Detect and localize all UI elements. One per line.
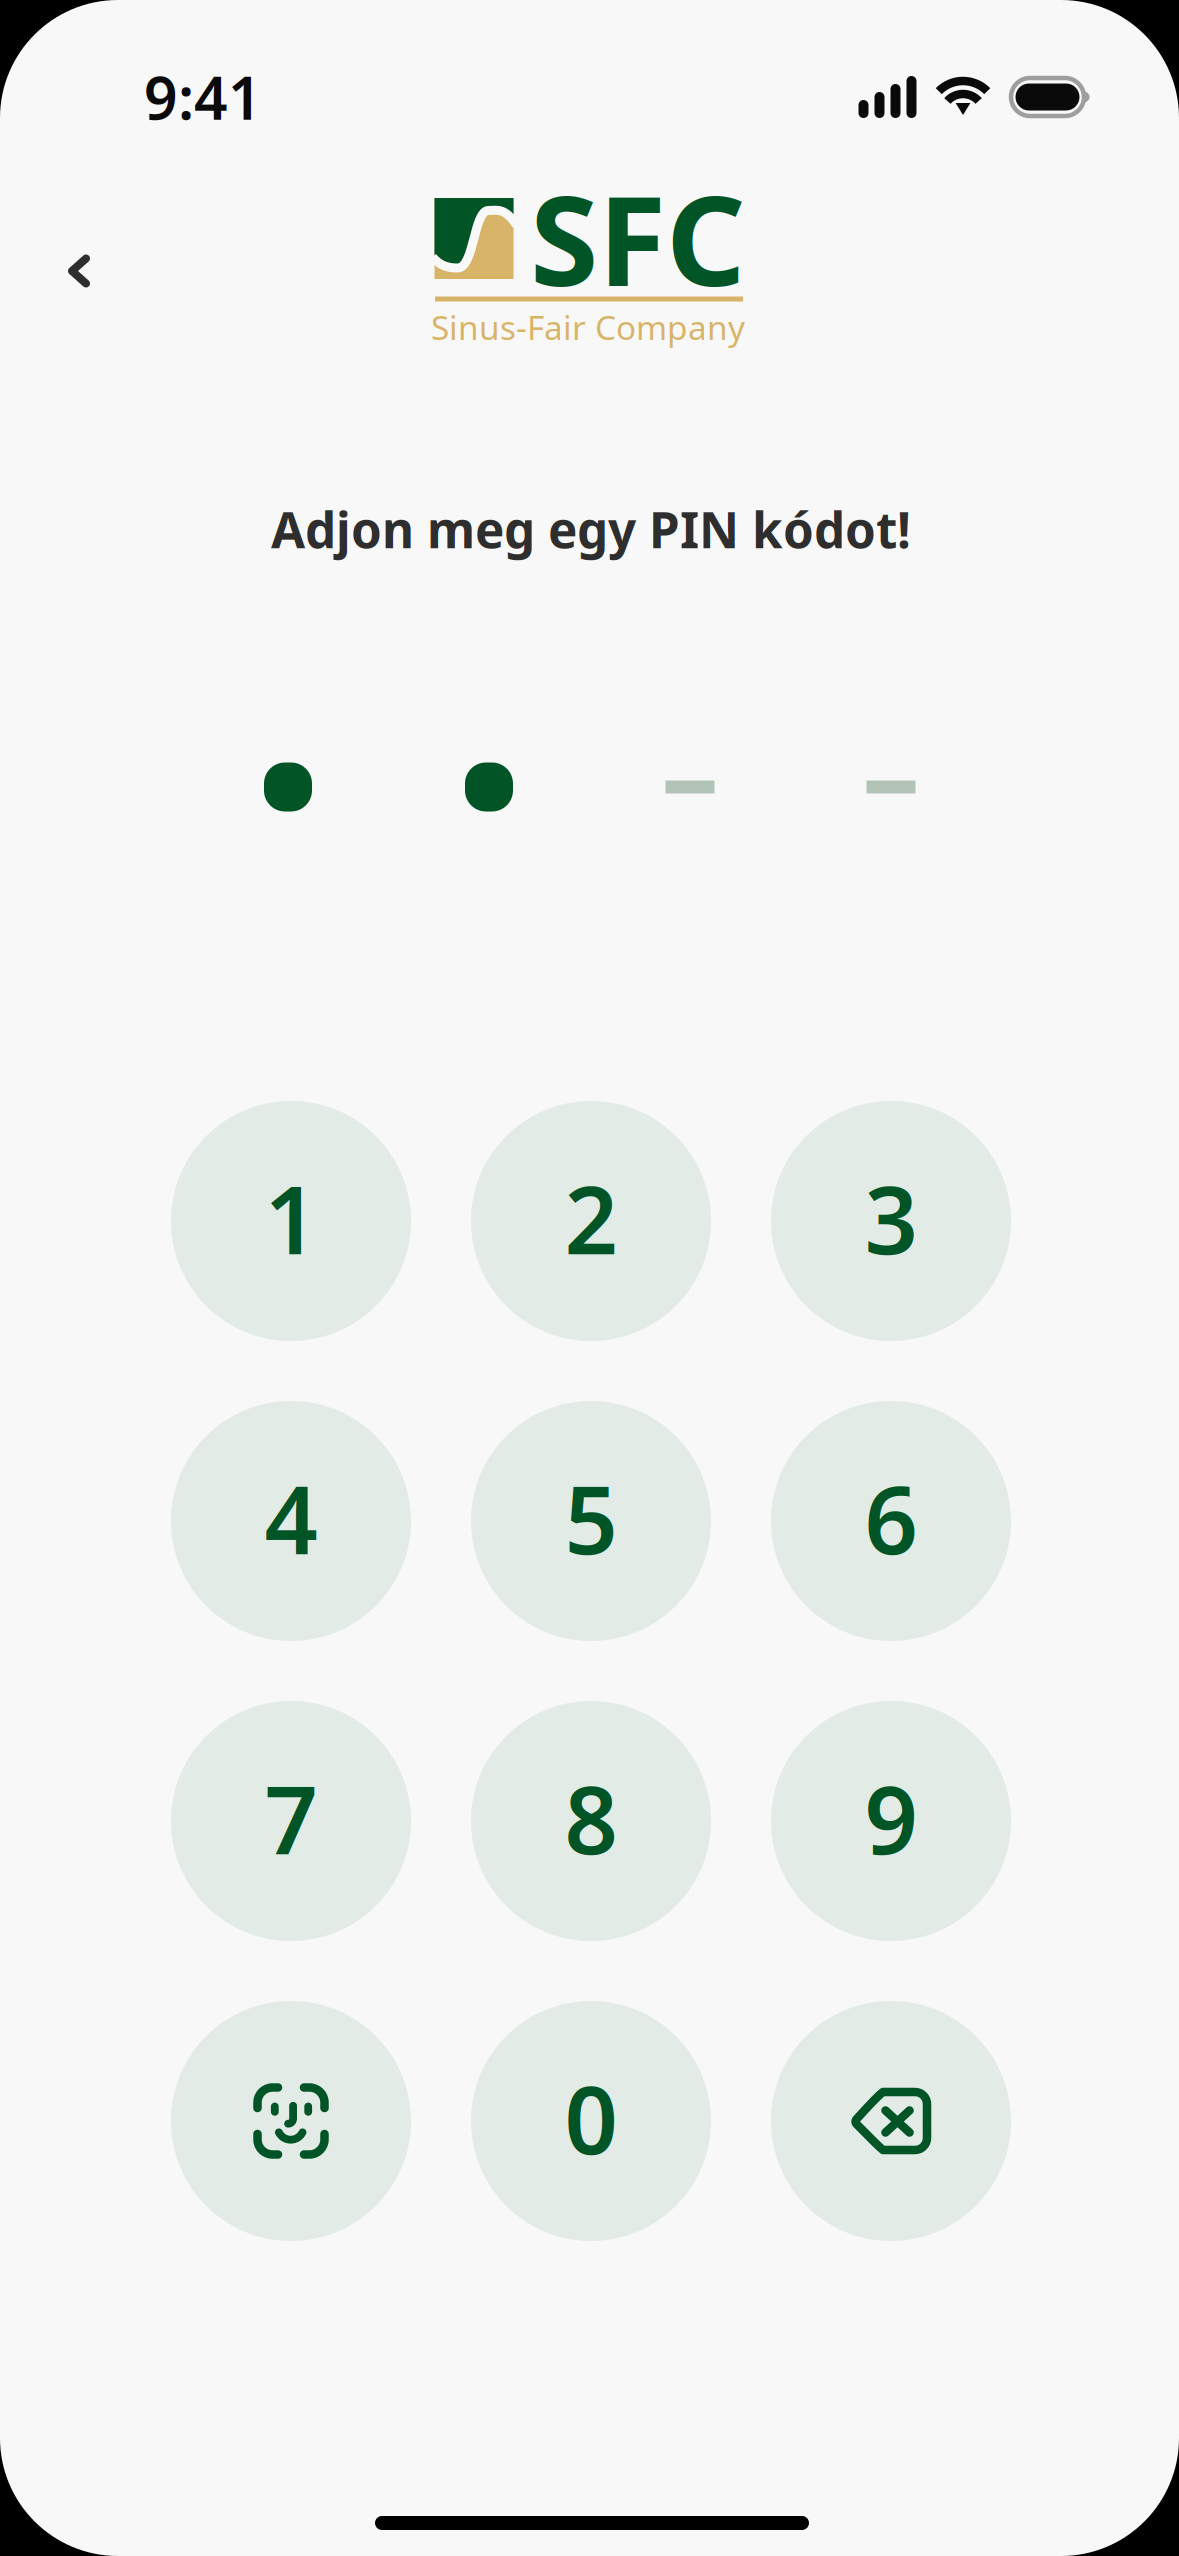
staticText: SFC: [530, 156, 746, 320]
button[interactable]: Delete: [771, 2001, 1011, 2241]
staticText: 5: [564, 1456, 617, 1580]
button[interactable]: Back: [34, 232, 122, 310]
staticText: 0: [564, 2056, 617, 2180]
staticText: Adjon meg egy PIN kódot!: [271, 496, 911, 562]
button[interactable]: 8: [471, 1701, 711, 1941]
staticText: 8: [564, 1756, 617, 1880]
button[interactable]: 6: [771, 1401, 1011, 1641]
button[interactable]: 3: [771, 1101, 1011, 1341]
button[interactable]: 9: [771, 1701, 1011, 1941]
staticText: 9: [864, 1756, 917, 1880]
staticText: 2: [564, 1156, 617, 1280]
button[interactable]: 7: [171, 1701, 411, 1941]
button[interactable]: 0: [471, 2001, 711, 2241]
button[interactable]: 1: [171, 1101, 411, 1341]
staticText: 9:41: [144, 58, 262, 136]
staticText: Sinus-Fair Company: [431, 305, 745, 349]
button[interactable]: 4: [171, 1401, 411, 1641]
staticText: 3: [864, 1156, 917, 1280]
staticText: 6: [864, 1456, 917, 1580]
staticText: 4: [264, 1456, 317, 1580]
button[interactable]: Face ID: [171, 2001, 411, 2241]
staticText: 7: [264, 1756, 317, 1880]
button[interactable]: 2: [471, 1101, 711, 1341]
button[interactable]: 5: [471, 1401, 711, 1641]
staticText: 1: [264, 1156, 317, 1280]
